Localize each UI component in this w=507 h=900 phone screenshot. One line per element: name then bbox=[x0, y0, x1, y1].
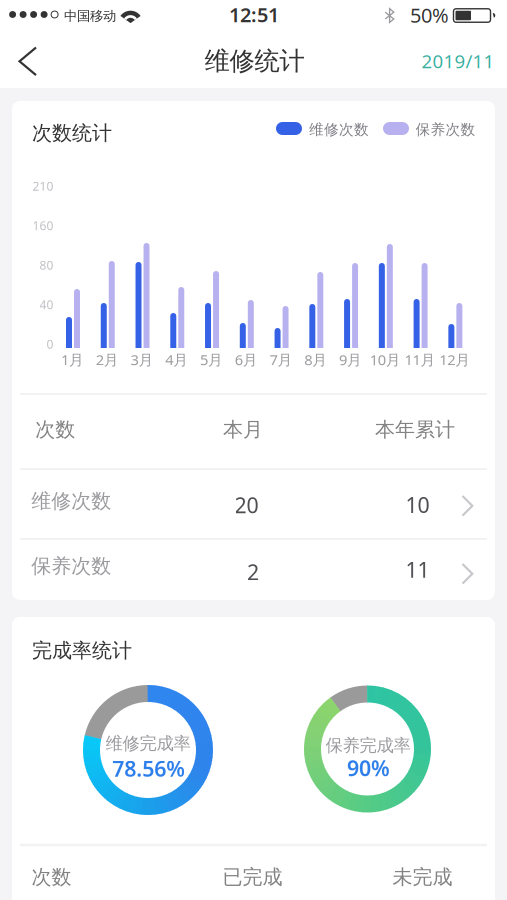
staticText: 保养次数 bbox=[415, 120, 475, 138]
staticText: 9月 bbox=[339, 350, 362, 369]
staticText: 2019/11 bbox=[421, 49, 494, 73]
staticText: 40 bbox=[39, 296, 53, 312]
staticText: 维修完成率 bbox=[105, 733, 190, 754]
staticText: 11月 bbox=[405, 350, 436, 369]
staticText: 210 bbox=[32, 178, 53, 194]
staticText: 80 bbox=[39, 257, 53, 273]
staticText: 维修次数 bbox=[31, 489, 111, 513]
staticText: 保养次数 bbox=[31, 554, 111, 578]
staticText: 12:51 bbox=[229, 1, 279, 28]
staticText: 12月 bbox=[439, 350, 470, 369]
staticText: 2 bbox=[247, 558, 259, 586]
button[interactable]: 保养次数 bbox=[12, 540, 495, 601]
button[interactable]: 2019/11 bbox=[413, 41, 503, 81]
staticText: 6月 bbox=[235, 350, 258, 369]
staticText: 次数 bbox=[31, 865, 71, 889]
button[interactable]: Back bbox=[8, 41, 52, 81]
staticText: 90% bbox=[347, 754, 390, 782]
staticText: 11 bbox=[405, 555, 429, 584]
staticText: 本年累计 bbox=[375, 417, 455, 442]
staticText: 本月 bbox=[223, 417, 263, 442]
staticText: 维修统计 bbox=[204, 45, 304, 76]
staticText: 50% bbox=[410, 2, 449, 28]
staticText: 10 bbox=[405, 490, 429, 519]
staticText: 维修次数 bbox=[309, 120, 369, 138]
staticText: 中国移动 bbox=[64, 8, 116, 24]
staticText: 10月 bbox=[370, 350, 401, 369]
staticText: 1月 bbox=[61, 350, 84, 369]
staticText: 完成率统计 bbox=[32, 638, 132, 663]
staticText: 未完成 bbox=[392, 865, 452, 889]
staticText: 3月 bbox=[130, 350, 153, 369]
staticText: 0 bbox=[46, 336, 53, 352]
staticText: 已完成 bbox=[222, 865, 282, 889]
staticText: 次数统计 bbox=[32, 121, 112, 145]
button[interactable]: 维修次数 bbox=[12, 470, 495, 540]
staticText: 7月 bbox=[270, 350, 293, 369]
staticText: 2月 bbox=[96, 350, 119, 369]
staticText: 4月 bbox=[165, 350, 188, 369]
staticText: 保养完成率 bbox=[325, 735, 410, 756]
staticText: 160 bbox=[32, 217, 53, 233]
staticText: 78.56% bbox=[112, 754, 185, 783]
staticText: 20 bbox=[234, 491, 258, 519]
staticText: 5月 bbox=[200, 350, 223, 369]
staticText: 8月 bbox=[304, 350, 327, 369]
staticText: 次数 bbox=[35, 417, 75, 442]
